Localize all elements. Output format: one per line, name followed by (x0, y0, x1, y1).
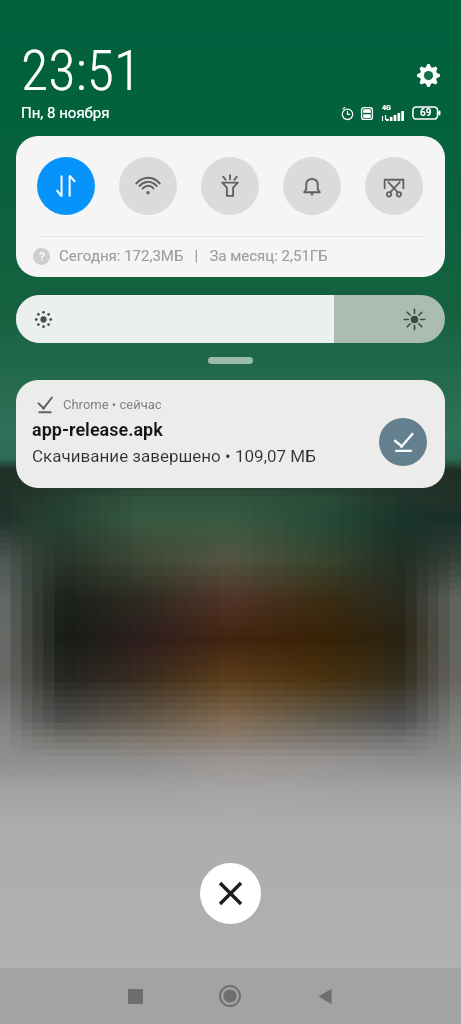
staticText: Сегодня: 172,3МБ | За месяц: 2,51ГБ (59, 247, 328, 265)
button[interactable]: Wi-Fi (119, 157, 177, 215)
button[interactable]: Data usage info (33, 248, 50, 265)
staticText: Скачивание завершено • 109,07 МБ (32, 446, 316, 466)
button[interactable]: Recents (111, 972, 159, 1020)
button[interactable]: Close notifications (200, 863, 261, 924)
button[interactable]: Do not disturb (283, 157, 341, 215)
staticText: ? (39, 250, 45, 264)
staticText: 4G (382, 104, 391, 112)
button[interactable]: Screenshot (365, 157, 423, 215)
button[interactable]: Chrome • сейчас (16, 380, 445, 488)
button[interactable]: Flashlight (201, 157, 259, 215)
button[interactable]: Brightness (16, 295, 445, 343)
button[interactable]: Home (206, 972, 254, 1020)
staticText: 23:51 (21, 38, 142, 104)
button[interactable]: Back (301, 972, 349, 1020)
button[interactable]: Mobile data (37, 157, 95, 215)
staticText: Chrome • сейчас (63, 397, 162, 412)
staticText: 69 (420, 107, 432, 119)
button[interactable]: Settings (410, 57, 446, 93)
staticText: app-release.apk (32, 419, 163, 440)
button[interactable]: Open download (379, 418, 427, 466)
staticText: Пн, 8 ноября (21, 104, 110, 122)
